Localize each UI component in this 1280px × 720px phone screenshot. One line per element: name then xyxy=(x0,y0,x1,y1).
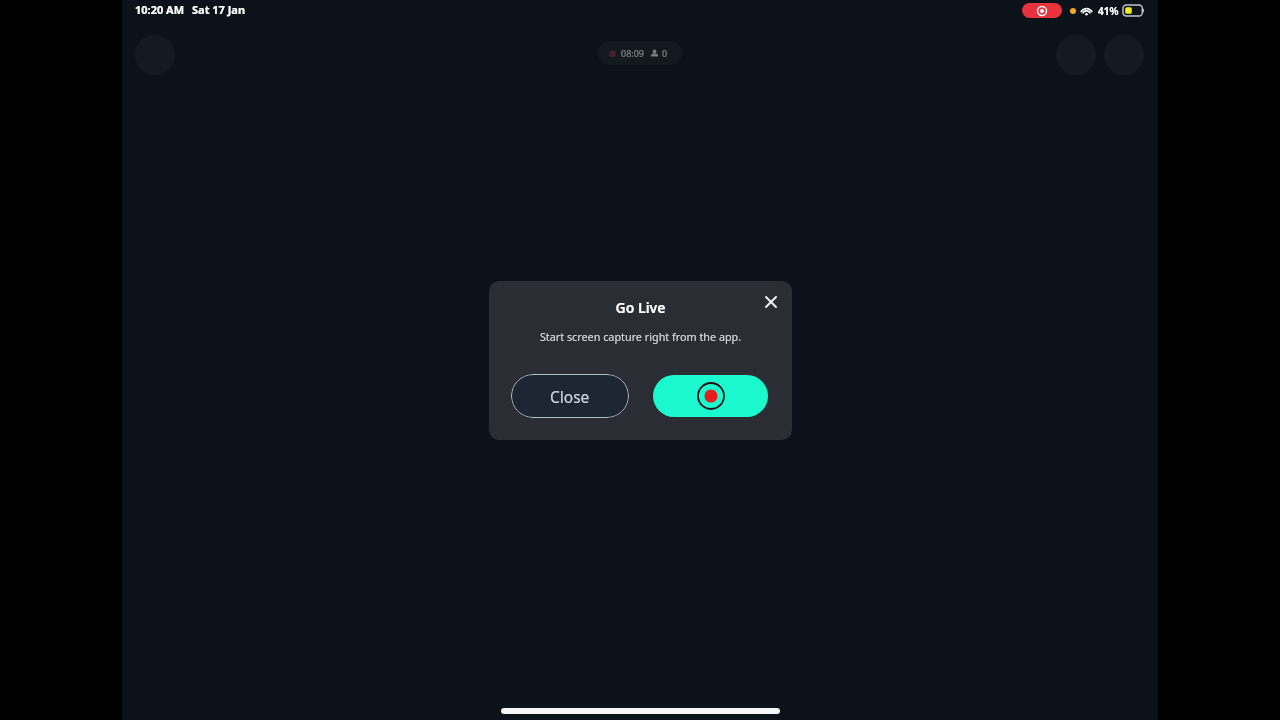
button[interactable]: Recording xyxy=(1022,3,1062,18)
button[interactable]: Switch camera xyxy=(1056,35,1096,75)
button[interactable]: More options xyxy=(1104,35,1144,75)
button[interactable]: 08:09 xyxy=(598,41,682,65)
staticText: Sat 17 Jan xyxy=(192,2,246,17)
staticText: 41% xyxy=(1098,4,1119,18)
staticText: 10:20 AM xyxy=(135,2,185,17)
button[interactable]: Start screen capture xyxy=(653,375,768,417)
staticText: Start screen capture right from the app. xyxy=(489,329,792,344)
button[interactable]: End stream xyxy=(135,35,175,75)
button[interactable]: Close dialog xyxy=(757,288,785,316)
staticText: 08:09 xyxy=(621,47,645,59)
staticText: Go Live xyxy=(489,298,792,317)
button[interactable]: Close xyxy=(511,374,629,418)
staticText: 0 xyxy=(662,47,668,59)
staticText: Close xyxy=(550,386,590,407)
